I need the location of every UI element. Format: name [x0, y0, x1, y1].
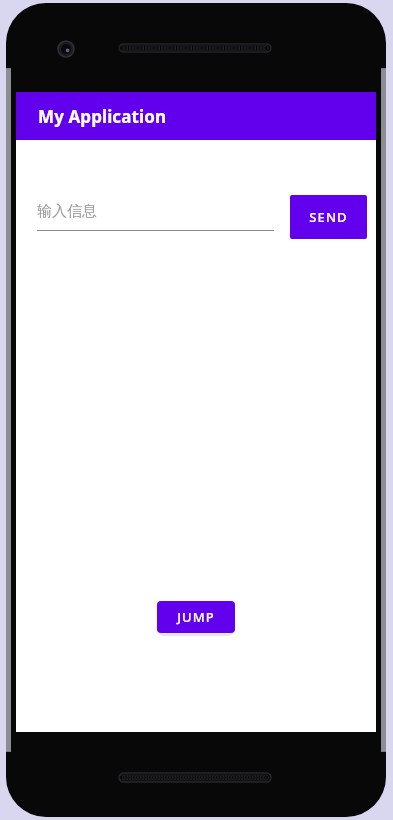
staticText: SEND	[309, 208, 348, 226]
staticText: JUMP	[177, 608, 215, 626]
button[interactable]: SEND	[290, 195, 367, 239]
staticText: 输入信息	[37, 202, 97, 221]
button[interactable]: JUMP	[157, 601, 235, 633]
button[interactable]: 输入信息	[37, 195, 274, 231]
staticText: My Application	[38, 105, 167, 128]
